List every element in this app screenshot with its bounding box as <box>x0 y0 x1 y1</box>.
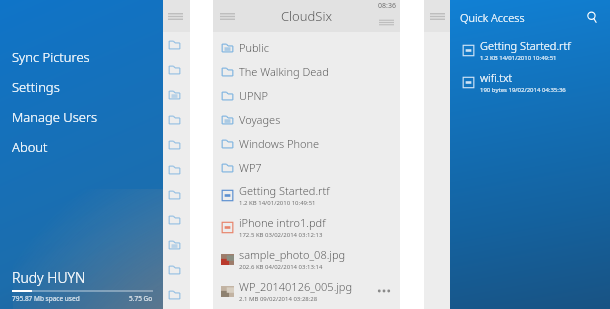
staticText: 202.6 KB 04/02/2014 03:13:14 <box>239 263 323 271</box>
staticText: UPNP <box>239 88 268 103</box>
button[interactable]: UPNP <box>213 83 400 107</box>
staticText: WP7 <box>239 160 262 175</box>
staticText: CloudSix <box>281 7 332 25</box>
staticText: 795.87 Mb space used <box>12 294 80 303</box>
button[interactable]: More <box>372 278 396 304</box>
staticText: Sync Pictures <box>12 48 90 66</box>
button[interactable]: Public <box>213 35 400 59</box>
staticText: Getting Started.rtf <box>239 183 330 198</box>
staticText: 172.5 KB 03/02/2014 03:12:13 <box>239 231 323 239</box>
button[interactable]: Manage Users <box>0 102 163 132</box>
button[interactable]: Getting Started.rtf <box>213 179 400 211</box>
button[interactable]: Folder <box>163 282 190 307</box>
button[interactable]: Folder <box>163 207 190 232</box>
staticText: The Walking Dead <box>239 64 329 79</box>
button[interactable]: WP_20140126_005.jpg <box>213 275 400 307</box>
button[interactable]: wifi.txt <box>450 66 610 98</box>
button[interactable]: More options <box>372 12 400 32</box>
staticText: iPhone intro1.pdf <box>239 215 326 230</box>
button[interactable]: Folder <box>163 182 190 207</box>
staticText: Windows Phone <box>239 136 320 151</box>
button[interactable]: Folder <box>163 132 190 157</box>
staticText: Settings <box>12 78 60 96</box>
staticText: Voyages <box>239 112 281 127</box>
staticText: 5.75 Go <box>129 294 153 303</box>
button[interactable]: Folder <box>163 32 190 57</box>
button[interactable]: iPhone intro1.pdf <box>213 211 400 243</box>
button[interactable]: Folder <box>163 232 190 257</box>
button[interactable]: Folder <box>163 107 190 132</box>
staticText: About <box>12 138 48 156</box>
staticText: Manage Users <box>12 108 98 126</box>
staticText: 08:36 <box>378 1 396 11</box>
staticText: Quick Access <box>460 10 525 25</box>
staticText: sample_photo_08.jpg <box>239 247 346 262</box>
staticText: 2.1 MB 09/02/2014 03:28:28 <box>239 295 318 303</box>
button[interactable]: Folder <box>163 57 190 82</box>
button[interactable]: Settings <box>0 72 163 102</box>
button[interactable]: Sync Pictures <box>0 42 163 72</box>
staticText: Rudy HUYN <box>12 268 86 287</box>
button[interactable]: Getting Started.rtf <box>450 34 610 66</box>
staticText: 190 bytes 19/02/2014 04:35:36 <box>480 86 566 94</box>
button[interactable]: sample_photo_08.jpg <box>213 243 400 275</box>
button[interactable]: Folder <box>163 157 190 182</box>
staticText: Public <box>239 40 269 55</box>
staticText: wifi.txt <box>480 70 513 85</box>
button[interactable]: WP7 <box>213 155 400 179</box>
staticText: Getting Started.rtf <box>480 38 571 53</box>
button[interactable]: About <box>0 132 163 162</box>
button[interactable]: Folder <box>163 82 190 107</box>
button[interactable]: Windows Phone <box>213 131 400 155</box>
button[interactable]: Voyages <box>213 107 400 131</box>
button[interactable]: Menu <box>213 4 241 28</box>
button[interactable]: Search <box>582 7 602 27</box>
button[interactable]: Folder <box>163 257 190 282</box>
staticText: 1.2 KB 14/01/2010 10:49:51 <box>239 199 316 207</box>
staticText: 1.2 KB 14/01/2010 10:49:51 <box>480 54 557 62</box>
button[interactable]: The Walking Dead <box>213 59 400 83</box>
staticText: WP_20140126_005.jpg <box>239 279 353 294</box>
